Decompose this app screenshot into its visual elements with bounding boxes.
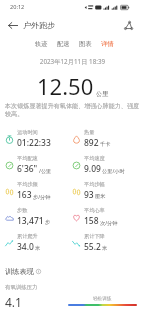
- staticText: 图表: [79, 40, 92, 48]
- staticText: 6'36": [17, 163, 38, 175]
- staticText: 4.1: [5, 294, 22, 310]
- staticText: 步数: [17, 207, 28, 214]
- staticText: 93: [84, 189, 94, 201]
- staticText: 20:12: [10, 3, 25, 11]
- staticText: 163: [17, 189, 32, 201]
- button[interactable]: 训练表现: [5, 267, 41, 276]
- staticText: 轻松训练: [93, 296, 112, 302]
- staticText: 平均心率: [84, 207, 105, 214]
- staticText: 公里: [96, 90, 108, 98]
- button[interactable]: 配速: [52, 38, 74, 50]
- button[interactable]: Share: [119, 16, 137, 34]
- staticText: 12.50: [37, 71, 94, 101]
- staticText: 平均步幅: [84, 181, 105, 188]
- button[interactable]: 累计下降: [72, 230, 145, 256]
- staticText: 千卡: [100, 141, 111, 148]
- staticText: 配速: [57, 40, 70, 48]
- button[interactable]: 累计爬升: [0, 230, 72, 256]
- staticText: 热量: [84, 129, 95, 136]
- staticText: 平均步频: [17, 181, 38, 188]
- staticText: 55.2: [84, 241, 101, 253]
- button[interactable]: Back: [4, 16, 22, 34]
- staticText: 累计爬升: [17, 233, 38, 240]
- staticText: 13,471: [17, 215, 44, 227]
- staticText: 步/分钟: [33, 193, 51, 200]
- staticText: 户外跑步: [23, 20, 55, 30]
- staticText: 本次锻炼显著提升有氧体能、增强心肺能力、强度 较高。: [5, 102, 140, 118]
- staticText: 公里/小时: [102, 167, 125, 174]
- button[interactable]: 平均心率: [72, 204, 145, 230]
- staticText: 次/分钟: [100, 219, 118, 226]
- button[interactable]: 热量: [72, 126, 145, 152]
- staticText: 运动时间: [17, 129, 38, 136]
- button[interactable]: 平均速度: [72, 152, 145, 178]
- button[interactable]: 详情: [96, 38, 118, 50]
- staticText: /公里: [39, 167, 52, 174]
- staticText: 34.0: [17, 241, 34, 253]
- button[interactable]: 平均步幅: [72, 178, 145, 204]
- staticText: 有氧训练压力: [5, 284, 38, 291]
- button[interactable]: 平均步频: [0, 178, 72, 204]
- staticText: 平均速度: [84, 155, 105, 162]
- staticText: 详情: [101, 40, 114, 48]
- staticText: 步: [45, 219, 51, 226]
- staticText: 平均配速: [17, 155, 38, 162]
- staticText: 892: [84, 137, 99, 149]
- button[interactable]: 图表: [74, 38, 96, 50]
- staticText: 厘米: [95, 193, 106, 200]
- staticText: 米: [102, 245, 108, 252]
- button[interactable]: 步数: [0, 204, 72, 230]
- button[interactable]: 平均配速: [0, 152, 72, 178]
- staticText: 9.09: [84, 163, 101, 175]
- staticText: 01:22:33: [17, 137, 51, 149]
- staticText: 轨迹: [35, 40, 48, 48]
- staticText: 158: [84, 215, 99, 227]
- staticText: 米: [35, 245, 41, 252]
- staticText: 2023年12月11日 18:39: [0, 57, 145, 66]
- button[interactable]: 运动时间: [0, 126, 72, 152]
- staticText: 训练表现: [5, 267, 34, 276]
- staticText: 累计下降: [84, 233, 105, 240]
- button[interactable]: 轨迹: [30, 38, 52, 50]
